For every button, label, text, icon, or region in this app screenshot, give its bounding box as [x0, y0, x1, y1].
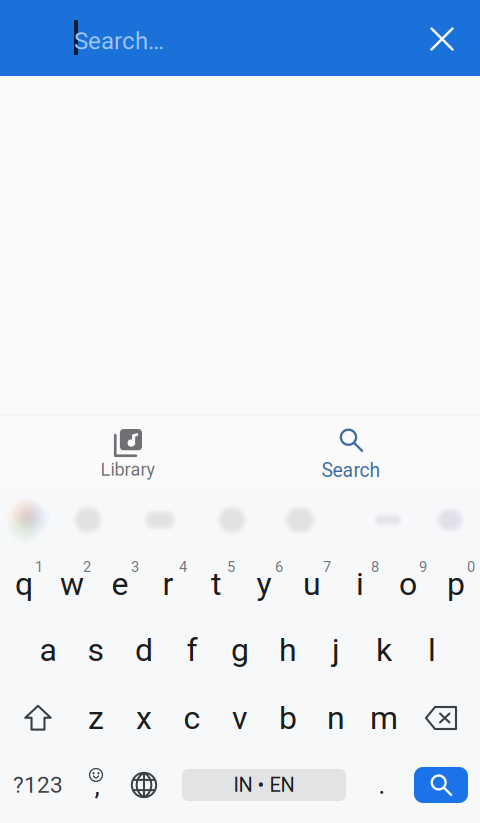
staticText: Search [321, 459, 380, 482]
button[interactable]: o [384, 547, 432, 614]
button[interactable]: d [120, 616, 168, 683]
staticText: IN • EN [233, 773, 294, 797]
button[interactable]: p [432, 547, 480, 614]
staticText: 4 [179, 558, 187, 576]
staticText: w [60, 565, 84, 603]
button[interactable]: n [312, 684, 360, 751]
button[interactable]: e [96, 547, 144, 614]
staticText: g [231, 631, 249, 669]
staticText: b [279, 699, 297, 737]
staticText: h [279, 631, 297, 669]
button[interactable]: u [288, 547, 336, 614]
button[interactable]: r [144, 547, 192, 614]
button[interactable]: j [312, 616, 360, 683]
staticText: d [135, 631, 153, 669]
button[interactable]: Shift [2, 684, 74, 751]
staticText: r [162, 565, 173, 603]
staticText: n [327, 699, 345, 737]
button[interactable]: w [48, 547, 96, 614]
staticText: u [303, 565, 321, 603]
staticText: q [15, 565, 33, 603]
button[interactable]: v [216, 684, 264, 751]
staticText: c [183, 699, 200, 737]
staticText: 9 [419, 558, 427, 576]
staticText: 3 [131, 558, 139, 576]
staticText: Library [100, 459, 155, 480]
button[interactable]: z [72, 684, 120, 751]
staticText: v [232, 699, 248, 737]
button[interactable]: ?123 [2, 754, 74, 816]
staticText: m [370, 699, 398, 737]
button[interactable]: Backspace [405, 684, 477, 751]
button[interactable]: c [168, 684, 216, 751]
button[interactable]: Search [414, 767, 468, 803]
staticText: 8 [371, 558, 379, 576]
staticText: Search… [74, 27, 164, 55]
button[interactable]: b [264, 684, 312, 751]
staticText: o [399, 565, 417, 603]
staticText: f [186, 631, 197, 669]
staticText: y [256, 565, 271, 603]
button[interactable]: y [240, 547, 288, 614]
button[interactable]: m [360, 684, 408, 751]
button[interactable]: Search [231, 415, 471, 488]
staticText: a [39, 631, 56, 669]
button[interactable]: IN • EN [182, 769, 346, 801]
button[interactable]: a [24, 616, 72, 683]
button[interactable]: . [358, 754, 406, 816]
staticText: l [428, 631, 436, 669]
staticText: 2 [83, 558, 91, 576]
button[interactable]: f [168, 616, 216, 683]
staticText: j [332, 631, 340, 669]
button[interactable]: t [192, 547, 240, 614]
staticText: z [88, 699, 104, 737]
staticText: ?123 [13, 772, 63, 798]
button[interactable]: g [216, 616, 264, 683]
button[interactable]: x [120, 684, 168, 751]
staticText: x [136, 699, 152, 737]
button[interactable]: q [0, 547, 48, 614]
button[interactable]: s [72, 616, 120, 683]
staticText: e [111, 565, 128, 603]
staticText: s [87, 631, 104, 669]
button[interactable]: Emoji keyboard [72, 754, 120, 816]
staticText: 7 [323, 558, 331, 576]
staticText: 1 [35, 558, 43, 576]
button[interactable]: Close search [414, 11, 470, 67]
button[interactable]: Library [8, 415, 248, 488]
button[interactable]: h [264, 616, 312, 683]
button[interactable]: l [408, 616, 456, 683]
staticText: i [356, 565, 364, 603]
staticText: 0 [467, 558, 475, 576]
staticText: k [376, 631, 392, 669]
staticText: 5 [227, 558, 235, 576]
button[interactable]: k [360, 616, 408, 683]
staticText: , [94, 770, 99, 802]
button[interactable]: i [336, 547, 384, 614]
staticText: t [211, 565, 221, 603]
staticText: p [447, 565, 465, 603]
staticText: . [378, 770, 385, 800]
staticText: 6 [275, 558, 283, 576]
button[interactable]: Switch language [120, 754, 168, 816]
